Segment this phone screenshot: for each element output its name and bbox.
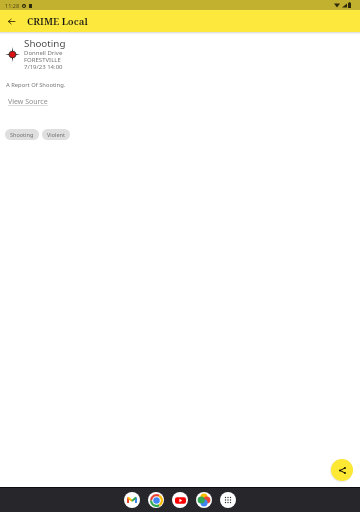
button[interactable]: Share	[331, 459, 353, 481]
staticText: View Source	[8, 97, 48, 107]
button[interactable]: Shooting	[5, 129, 39, 140]
staticText: CRIME Local	[27, 15, 88, 28]
staticText: Shooting	[24, 37, 66, 49]
staticText: Violent	[47, 131, 65, 138]
staticText: Shooting	[10, 131, 34, 138]
button[interactable]: Gmail	[124, 492, 140, 508]
button[interactable]: Back	[5, 15, 18, 28]
staticText: FORESTVILLE	[24, 56, 61, 63]
button[interactable]: Photos	[196, 492, 212, 508]
button[interactable]: Violent	[42, 129, 70, 140]
button[interactable]: YouTube	[172, 492, 188, 508]
staticText: A Report Of Shooting.	[6, 81, 66, 89]
staticText: 7/19/23 14:00	[24, 63, 63, 70]
staticText: 11:28	[5, 2, 20, 9]
button[interactable]: Chrome	[148, 492, 164, 508]
button[interactable]: All apps	[220, 492, 236, 508]
button[interactable]: View Source	[8, 97, 48, 107]
staticText: Donnell Drive	[24, 49, 63, 56]
